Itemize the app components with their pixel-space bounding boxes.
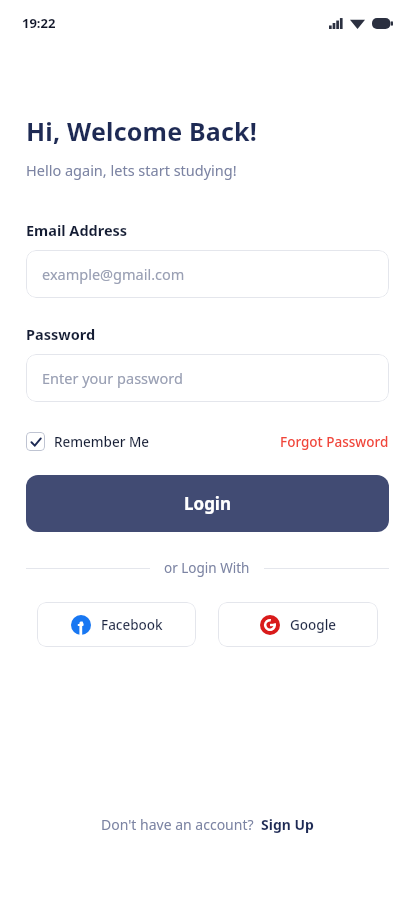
staticText: 19:22: [22, 14, 56, 32]
staticText: Remember Me: [54, 433, 150, 451]
staticText: example@gmail.com: [42, 264, 185, 284]
button[interactable]: Login: [26, 475, 389, 532]
button[interactable]: example@gmail.com: [26, 250, 389, 298]
button[interactable]: Facebook: [37, 602, 196, 647]
button[interactable]: Forgot Password: [280, 433, 389, 451]
staticText: Login: [184, 492, 232, 515]
staticText: Hi, Welcome Back!: [26, 114, 258, 148]
staticText: Enter your password: [42, 368, 183, 388]
staticText: Email Address: [26, 220, 128, 240]
button[interactable]: Enter your password: [26, 354, 389, 402]
staticText: or Login With: [164, 559, 250, 577]
staticText: Hello again, lets start studying!: [26, 160, 237, 180]
button[interactable]: Remember Me: [26, 432, 150, 451]
staticText: Don't have an account?: [101, 815, 254, 834]
staticText: Facebook: [101, 616, 163, 634]
staticText: Password: [26, 324, 96, 344]
staticText: Google: [290, 616, 337, 634]
button[interactable]: Google: [218, 602, 378, 647]
button[interactable]: Sign Up: [261, 815, 314, 834]
